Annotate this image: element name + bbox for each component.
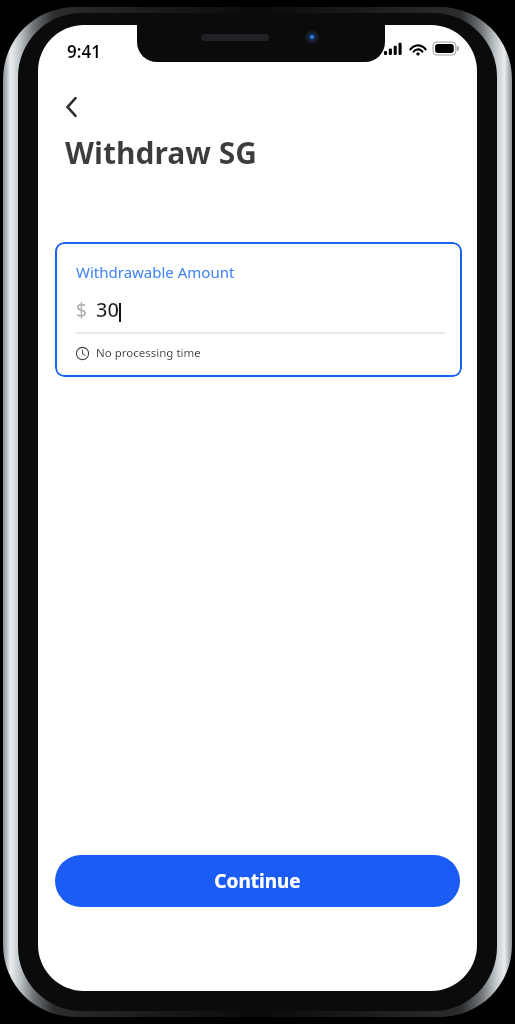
- button[interactable]: Back: [48, 83, 96, 131]
- staticText: Withdrawable Amount: [76, 262, 235, 282]
- button[interactable]: Continue: [55, 855, 460, 907]
- staticText: No processing time: [96, 345, 201, 361]
- button[interactable]: Withdrawable Amount: [55, 242, 462, 377]
- staticText: Withdraw SG: [65, 132, 257, 173]
- staticText: 30: [96, 296, 119, 323]
- staticText: 9:41: [67, 40, 101, 63]
- staticText: Continue: [214, 868, 301, 894]
- staticText: $: [76, 297, 87, 323]
